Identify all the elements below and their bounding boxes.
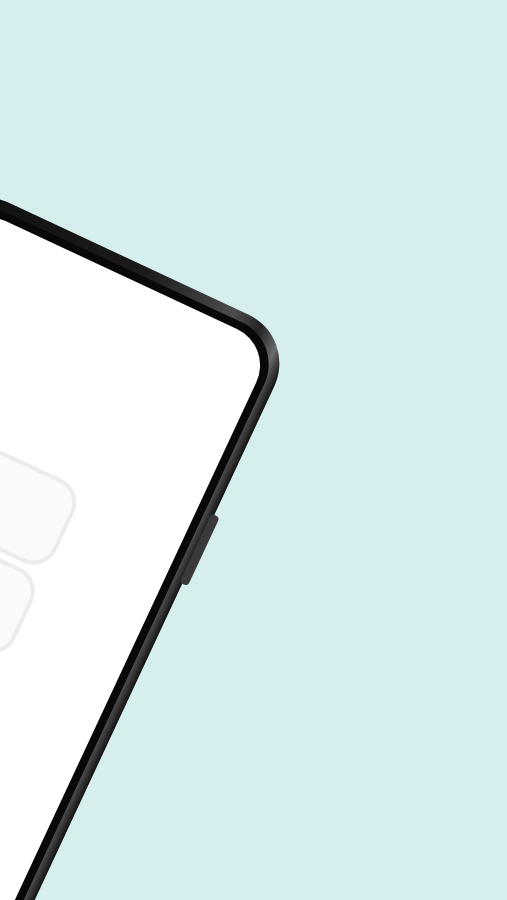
button[interactable]: Phone mockup on mint background bbox=[0, 0, 507, 900]
